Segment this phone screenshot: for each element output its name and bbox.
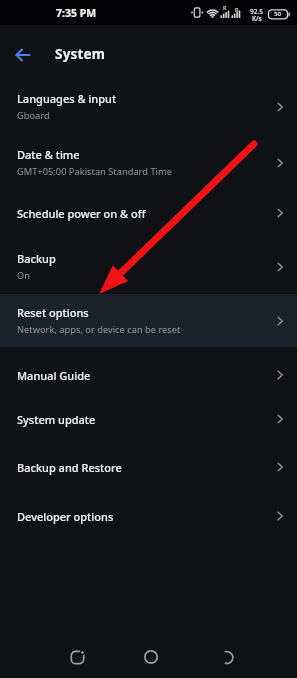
staticText: On: [17, 269, 31, 282]
button[interactable]: [209, 639, 245, 675]
staticText: Date & time: [17, 147, 80, 162]
staticText: 92.5: [250, 7, 263, 16]
staticText: Backup and Restore: [17, 460, 122, 475]
staticText: Backup: [17, 251, 56, 266]
button[interactable]: Backup and Restore: [0, 443, 297, 491]
staticText: 50: [274, 10, 281, 18]
staticText: Developer options: [17, 509, 114, 524]
staticText: System: [55, 45, 106, 63]
staticText: R: [223, 4, 227, 11]
button[interactable]: System update: [0, 395, 297, 443]
button[interactable]: [133, 639, 169, 675]
staticText: Gboard: [17, 109, 50, 122]
staticText: System update: [17, 412, 96, 427]
staticText: Network, apps, or device can be reset: [17, 323, 181, 336]
staticText: GMT+05:00 Pakistan Standard Time: [17, 165, 172, 178]
staticText: Manual Guide: [17, 368, 91, 383]
button[interactable]: [59, 639, 95, 675]
button[interactable]: Date & time: [0, 136, 297, 189]
button[interactable]: Backup: [0, 240, 297, 293]
button[interactable]: Schedule power on & off: [0, 189, 297, 237]
staticText: Schedule power on & off: [17, 206, 146, 221]
staticText: R: [235, 6, 239, 13]
button[interactable]: [8, 40, 38, 70]
button[interactable]: Languages & input: [0, 80, 297, 133]
staticText: 7:35 PM: [56, 6, 97, 20]
staticText: Reset options: [17, 305, 89, 320]
staticText: Languages & input: [17, 91, 117, 106]
staticText: K/s: [252, 14, 262, 23]
button[interactable]: Developer options: [0, 492, 297, 540]
button[interactable]: Manual Guide: [0, 351, 297, 399]
button[interactable]: Reset options: [0, 294, 297, 347]
